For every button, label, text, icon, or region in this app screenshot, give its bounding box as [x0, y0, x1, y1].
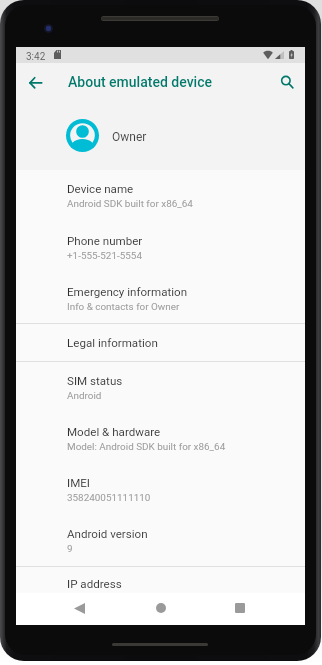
staticText: Legal information	[67, 336, 158, 350]
staticText: Info & contacts for Owner	[67, 301, 180, 313]
button[interactable]: IMEI	[16, 464, 305, 515]
staticText: Model: Android SDK built for x86_64	[67, 441, 226, 453]
staticText: Android	[67, 390, 102, 402]
staticText: Owner	[112, 130, 147, 144]
staticText: About emulated device	[68, 74, 213, 90]
button[interactable]: Search	[274, 69, 300, 95]
button[interactable]: Android version	[16, 515, 305, 566]
button[interactable]: Recents	[210, 593, 270, 625]
button[interactable]: SIM status	[16, 362, 305, 413]
staticText: Model & hardware	[67, 425, 161, 439]
staticText: Android SDK built for x86_64	[67, 198, 193, 210]
button[interactable]: Phone number	[16, 222, 305, 273]
button[interactable]: Legal information	[16, 324, 305, 361]
button[interactable]: Owner	[16, 100, 305, 170]
button[interactable]: Home	[131, 593, 191, 625]
staticText: Android version	[67, 527, 148, 541]
button[interactable]: Emergency information	[16, 273, 305, 323]
staticText: Device name	[67, 182, 134, 196]
staticText: 9	[67, 543, 73, 555]
staticText: IP address	[67, 577, 122, 591]
staticText: Phone number	[67, 234, 143, 248]
staticText: +1-555-521-5554	[67, 250, 142, 262]
staticText: 3:42	[26, 51, 46, 63]
staticText: SIM status	[67, 374, 123, 388]
button[interactable]: Device name	[16, 170, 305, 222]
staticText: 358240051111110	[67, 492, 151, 504]
staticText: IMEI	[67, 476, 91, 490]
button[interactable]: IP address	[16, 567, 305, 593]
button[interactable]: Back	[49, 593, 109, 625]
staticText: Emergency information	[67, 285, 188, 299]
button[interactable]: Model & hardware	[16, 413, 305, 464]
button[interactable]: Back	[20, 67, 50, 97]
